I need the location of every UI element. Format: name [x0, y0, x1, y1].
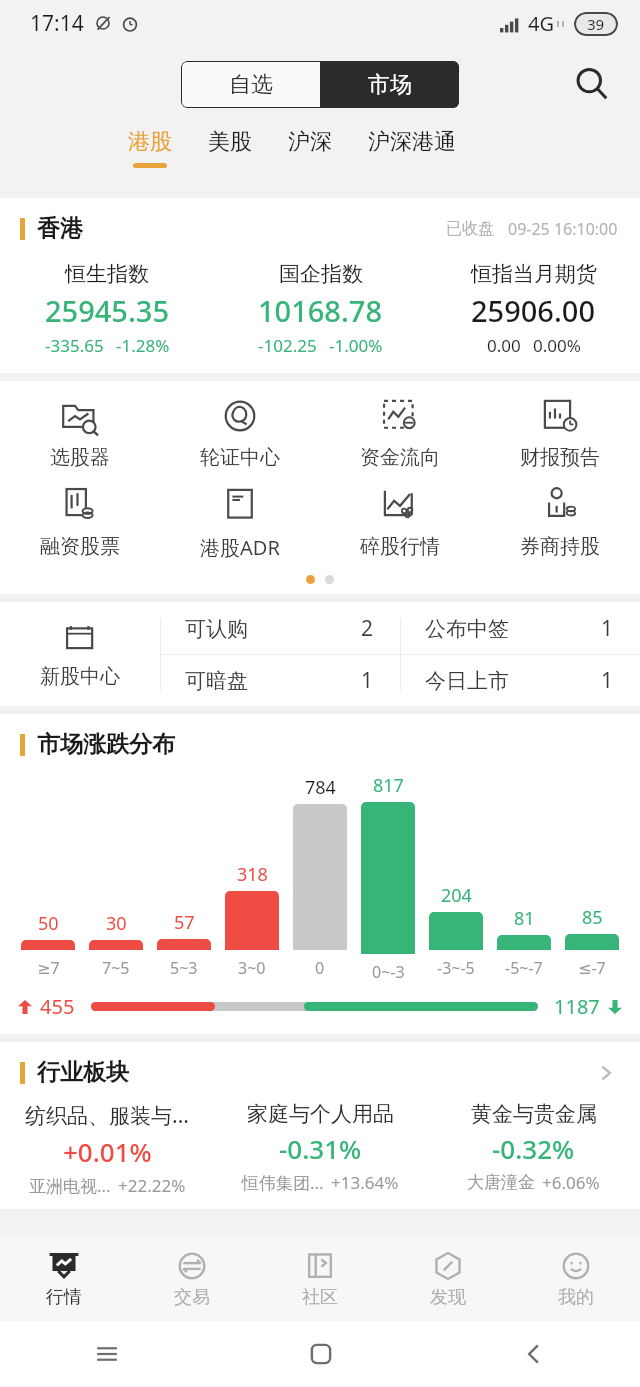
staticText: 交易	[174, 1286, 210, 1309]
staticText: 可认购	[185, 616, 248, 642]
button[interactable]: 纺织品、服装与...	[0, 1101, 214, 1197]
staticText: 我的	[558, 1286, 594, 1309]
staticText: 1	[361, 666, 374, 695]
button[interactable]: 家庭与个人用品	[214, 1101, 427, 1194]
staticText: 09-25 16:10:00	[508, 218, 618, 240]
staticText: ≥7	[37, 957, 60, 979]
staticText: 纺织品、服装与...	[25, 1101, 189, 1130]
button[interactable]: 国企指数	[214, 261, 427, 357]
button[interactable]: 交易	[128, 1235, 256, 1321]
staticText: 轮证中心	[200, 445, 280, 470]
staticText: 今日上市	[425, 668, 509, 694]
button[interactable]: 券商持股	[480, 484, 640, 559]
staticText: 5~3	[170, 957, 198, 979]
staticText: -0.32%	[492, 1131, 575, 1166]
staticText: 发现	[430, 1286, 466, 1309]
staticText: 港股	[128, 128, 172, 156]
staticText: 318	[237, 862, 268, 887]
staticText: 财报预告	[520, 445, 600, 470]
button[interactable]: 黄金与贵金属	[427, 1101, 640, 1194]
staticText: +0.01%	[63, 1134, 152, 1169]
staticText: 50	[38, 911, 59, 936]
button[interactable]: More sectors	[592, 1059, 620, 1087]
staticText: 2	[361, 614, 374, 643]
staticText: 亚洲电视...	[29, 1174, 111, 1197]
staticText: +6.06%	[542, 1171, 600, 1194]
button[interactable]: 今日上市	[401, 655, 640, 706]
staticText: -5~-7	[505, 957, 543, 979]
button[interactable]: 恒指当月期货	[427, 261, 640, 357]
button[interactable]: Back	[511, 1331, 557, 1377]
button[interactable]: 市场	[320, 61, 459, 108]
staticText: 沪深港通	[368, 128, 456, 156]
staticText: 784	[305, 775, 336, 800]
button[interactable]: 可认购	[161, 603, 400, 654]
button[interactable]: 融资股票	[0, 484, 160, 559]
button[interactable]: Recents	[84, 1331, 130, 1377]
button[interactable]: 沪深	[270, 128, 350, 163]
staticText: 黄金与贵金属	[471, 1101, 597, 1127]
button[interactable]: 资金流向	[320, 395, 480, 470]
button[interactable]: 社区	[256, 1235, 384, 1321]
button[interactable]: 碎股行情	[320, 484, 480, 559]
button[interactable]: 行情	[0, 1235, 128, 1321]
button[interactable]: 选股器	[0, 395, 160, 470]
staticText: 0.00	[487, 334, 521, 357]
staticText: 85	[582, 905, 603, 930]
staticText: 0	[315, 957, 325, 979]
staticText: -3~-5	[437, 957, 475, 979]
staticText: 4G	[528, 10, 554, 37]
staticText: 美股	[208, 128, 252, 156]
button[interactable]: 自选	[181, 61, 320, 108]
staticText: -335.65	[45, 334, 104, 357]
button[interactable]: 可暗盘	[161, 655, 400, 706]
staticText: ≤-7	[578, 957, 606, 979]
staticText: 市场涨跌分布	[37, 730, 175, 759]
staticText: -0.31%	[279, 1131, 362, 1166]
button[interactable]: 新股中心	[0, 620, 160, 689]
button[interactable]: 发现	[384, 1235, 512, 1321]
staticText: 0~-3	[372, 961, 405, 979]
staticText: -1.00%	[329, 334, 383, 357]
staticText: 碎股行情	[360, 534, 440, 559]
staticText: 港股ADR	[200, 534, 280, 561]
staticText: 已收盘	[446, 219, 494, 239]
button[interactable]: 轮证中心	[160, 395, 320, 470]
staticText: 30	[106, 911, 127, 936]
button[interactable]: 港股	[110, 128, 190, 168]
staticText: 选股器	[50, 445, 110, 470]
staticText: 社区	[302, 1286, 338, 1309]
staticText: 1	[601, 614, 614, 643]
staticText: 0.00%	[533, 334, 581, 357]
staticText: 恒指当月期货	[471, 261, 597, 287]
staticText: 25945.35	[45, 291, 170, 330]
staticText: 恒生指数	[65, 261, 149, 287]
button[interactable]: Home	[298, 1331, 344, 1377]
staticText: 大唐潼金	[467, 1172, 535, 1193]
staticText: 行情	[46, 1286, 82, 1309]
staticText: -1.28%	[116, 334, 170, 357]
button[interactable]: 美股	[190, 128, 270, 163]
button[interactable]: Search	[566, 58, 618, 110]
staticText: 国企指数	[279, 261, 363, 287]
button[interactable]: 我的	[512, 1235, 640, 1321]
staticText: 可暗盘	[185, 668, 248, 694]
staticText: 1187	[554, 993, 600, 1020]
staticText: 3~0	[238, 957, 266, 979]
button[interactable]: 港股ADR	[160, 484, 320, 561]
staticText: 17:14	[30, 9, 84, 38]
button[interactable]: 财报预告	[480, 395, 640, 470]
staticText: 资金流向	[360, 445, 440, 470]
staticText: 204	[441, 883, 472, 908]
staticText: 券商持股	[520, 534, 600, 559]
button[interactable]: 沪深港通	[350, 128, 474, 163]
button[interactable]: 恒生指数	[0, 261, 214, 357]
staticText: 7~5	[102, 957, 130, 979]
button[interactable]: 公布中签	[401, 603, 640, 654]
staticText: 香港	[37, 214, 83, 243]
staticText: 家庭与个人用品	[247, 1101, 394, 1127]
staticText: 39	[587, 14, 605, 34]
staticText: 恒伟集团...	[242, 1171, 324, 1194]
staticText: 新股中心	[40, 664, 120, 689]
staticText: 81	[514, 906, 535, 931]
